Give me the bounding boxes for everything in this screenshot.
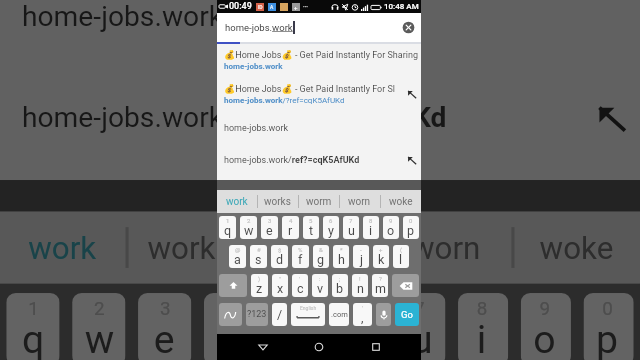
button[interactable]: Shift	[219, 274, 247, 297]
button[interactable]: woke	[511, 211, 640, 284]
staticText: home-jobs.work/ref?=cqK5AfUKd	[224, 155, 360, 166]
button[interactable]: woke	[380, 190, 421, 213]
button[interactable]: #	[250, 245, 267, 268]
button[interactable]: worm	[298, 190, 339, 213]
button[interactable]: )	[251, 274, 268, 297]
button[interactable]: 9	[521, 293, 571, 360]
button[interactable]: 4	[204, 293, 257, 360]
staticText: y	[348, 315, 367, 360]
button[interactable]: :	[312, 274, 328, 297]
button[interactable]: 2	[72, 293, 125, 360]
staticText: 2	[94, 296, 107, 318]
button[interactable]: Back	[252, 336, 274, 358]
staticText: j	[360, 252, 363, 267]
button[interactable]: 6	[332, 293, 383, 360]
button[interactable]: '	[353, 303, 372, 326]
button[interactable]: worn	[339, 190, 380, 213]
button[interactable]: 1	[6, 293, 60, 360]
button[interactable]: works	[257, 190, 298, 213]
button[interactable]: -	[353, 245, 369, 268]
button[interactable]: Glide typing	[219, 303, 242, 326]
button[interactable]: 1	[219, 216, 236, 239]
button[interactable]: ?	[372, 274, 388, 297]
staticText: o	[533, 315, 558, 360]
button[interactable]: home-jobs.work	[217, 112, 421, 144]
button[interactable]: Clear query	[402, 21, 415, 34]
button[interactable]: home-jobs.work	[0, 0, 640, 67]
staticText: works	[264, 196, 291, 208]
button[interactable]: Go	[395, 303, 419, 326]
button[interactable]: Insert suggestion	[405, 87, 419, 101]
button[interactable]: 💰Home Jobs💰 - Get Paid Instantly For Sha…	[217, 44, 421, 78]
button[interactable]: @	[229, 245, 246, 268]
button[interactable]: &	[313, 245, 329, 268]
button[interactable]: 3	[138, 293, 191, 360]
button[interactable]: 0	[583, 293, 634, 360]
staticText: 6	[329, 217, 333, 224]
button[interactable]: Home	[308, 336, 330, 358]
button[interactable]: 6	[323, 216, 339, 239]
button[interactable]: *	[333, 245, 349, 268]
button[interactable]: .com	[329, 303, 349, 326]
button[interactable]: worm	[254, 211, 383, 284]
button[interactable]: work	[0, 211, 125, 284]
staticText: p	[407, 223, 415, 238]
staticText: English	[300, 305, 317, 311]
button[interactable]: Recent apps	[365, 336, 387, 358]
staticText: 9	[389, 217, 393, 224]
button[interactable]: 8	[363, 216, 379, 239]
button[interactable]: !	[352, 274, 368, 297]
staticText: 6	[351, 296, 364, 318]
staticText: 1	[28, 296, 41, 318]
button[interactable]: work	[217, 190, 257, 213]
button[interactable]: ;	[332, 274, 348, 297]
staticText: h	[338, 252, 345, 267]
button[interactable]: Insert suggestion	[590, 95, 634, 139]
button[interactable]: Voice input	[376, 303, 391, 326]
staticText: ,	[361, 310, 364, 325]
button[interactable]: +	[373, 245, 389, 268]
staticText: g	[317, 252, 325, 267]
button[interactable]: Space	[291, 303, 325, 326]
button[interactable]: 0	[403, 216, 419, 239]
button[interactable]: home-jobs.work/ref?=cqK5AfUKd	[0, 67, 640, 168]
staticText: worm	[306, 196, 332, 208]
staticText: 0	[409, 217, 413, 224]
staticText: @	[235, 246, 241, 253]
staticText: %	[298, 246, 303, 253]
staticText: 5	[289, 296, 301, 318]
staticText: work	[226, 196, 248, 208]
button[interactable]: 💰Home Jobs💰 - Get Paid Instantly For Sl	[217, 78, 421, 112]
button[interactable]: 8	[458, 293, 508, 360]
staticText: work	[28, 230, 97, 268]
button[interactable]: 2	[240, 216, 257, 239]
button[interactable]: (	[393, 245, 409, 268]
button[interactable]: $	[271, 245, 288, 268]
staticText: s	[255, 252, 262, 267]
button[interactable]: %	[292, 245, 309, 268]
button[interactable]: 5	[303, 216, 319, 239]
button[interactable]: 7	[395, 293, 445, 360]
button[interactable]: 7	[343, 216, 359, 239]
staticText: '	[299, 275, 301, 282]
button[interactable]: "	[272, 274, 288, 297]
staticText: i	[369, 223, 373, 238]
staticText: t	[309, 223, 314, 238]
button[interactable]: 5	[270, 293, 320, 360]
button[interactable]: '	[292, 274, 308, 297]
staticText: b	[336, 281, 344, 296]
button[interactable]: ?123	[246, 303, 268, 326]
button[interactable]: Insert suggestion	[405, 153, 419, 167]
staticText: z	[256, 281, 263, 296]
button[interactable]: worn	[383, 211, 511, 284]
button[interactable]: /	[272, 303, 287, 326]
staticText: 0	[602, 296, 615, 318]
button[interactable]: 4	[282, 216, 299, 239]
button[interactable]: Backspace	[392, 274, 419, 297]
button[interactable]: 9	[383, 216, 399, 239]
staticText: A	[270, 4, 274, 10]
staticText: '	[362, 304, 364, 311]
button[interactable]: works	[125, 211, 254, 284]
button[interactable]: home-jobs.work/ref?=cqK5AfUKd	[217, 144, 421, 176]
button[interactable]: 3	[261, 216, 278, 239]
